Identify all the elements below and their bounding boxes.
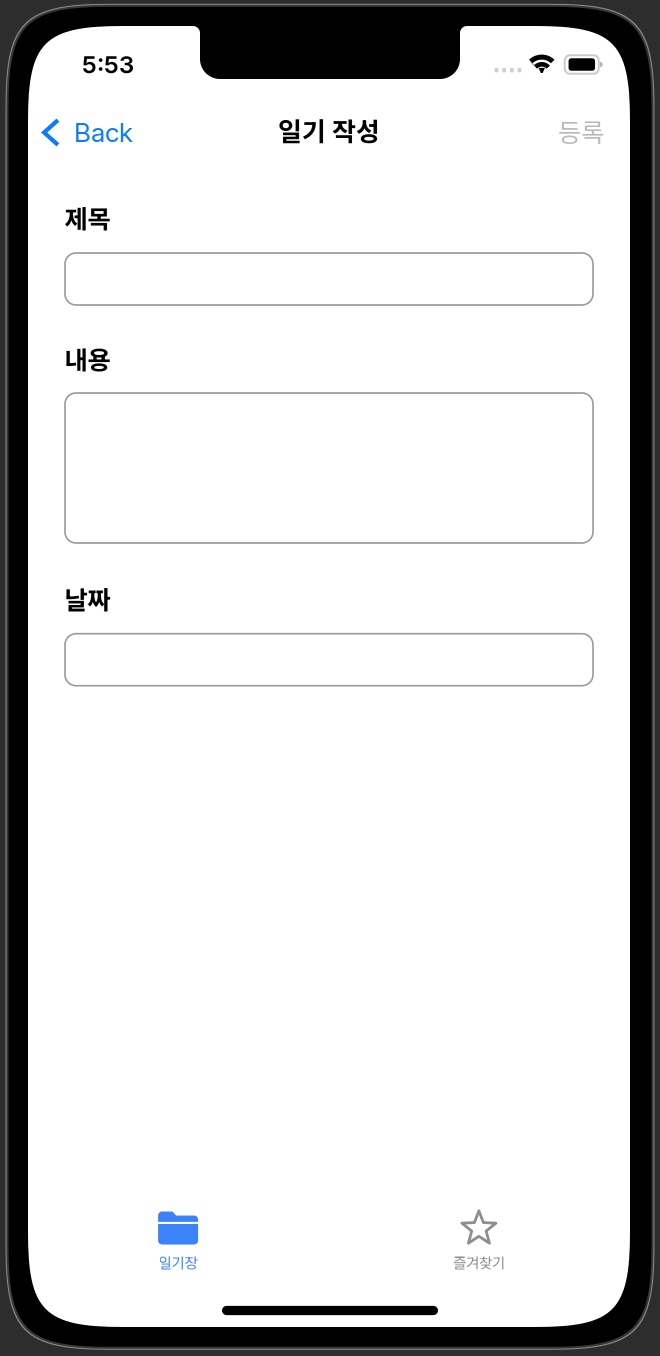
button[interactable]: 일기장 <box>103 1203 253 1285</box>
staticText: 일기 작성 <box>278 111 380 149</box>
button[interactable]: Back <box>42 102 160 162</box>
staticText: 제목 <box>64 199 110 236</box>
staticText: 내용 <box>64 340 110 377</box>
staticText: 날짜 <box>64 580 110 617</box>
staticText: 즐겨찾기 <box>453 1251 505 1273</box>
staticText: 일기장 <box>159 1251 198 1273</box>
button[interactable]: 즐겨찾기 <box>404 1203 554 1285</box>
staticText: 5:53 <box>82 50 134 79</box>
staticText: Back <box>74 117 133 148</box>
button[interactable]: 등록 <box>508 101 604 161</box>
staticText: 등록 <box>558 113 604 149</box>
